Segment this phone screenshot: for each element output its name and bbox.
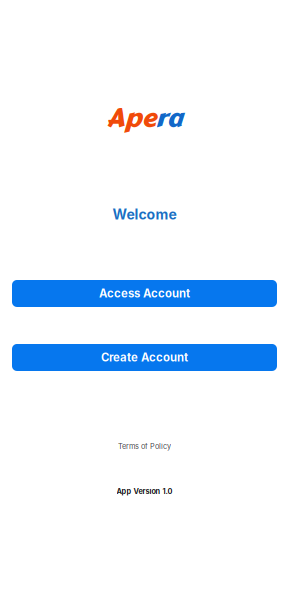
staticText: Access Account — [99, 287, 190, 300]
button[interactable]: Create Account — [12, 344, 277, 371]
staticText: Ape — [106, 98, 155, 138]
staticText: ra — [155, 98, 182, 138]
staticText: Create Account — [101, 351, 188, 364]
staticText: Welcome — [112, 206, 176, 223]
staticText: App Version 1.0 — [116, 487, 172, 496]
button[interactable]: Terms of Policy — [118, 442, 171, 451]
button[interactable]: Access Account — [12, 280, 277, 307]
staticText: Terms of Policy — [118, 442, 171, 451]
